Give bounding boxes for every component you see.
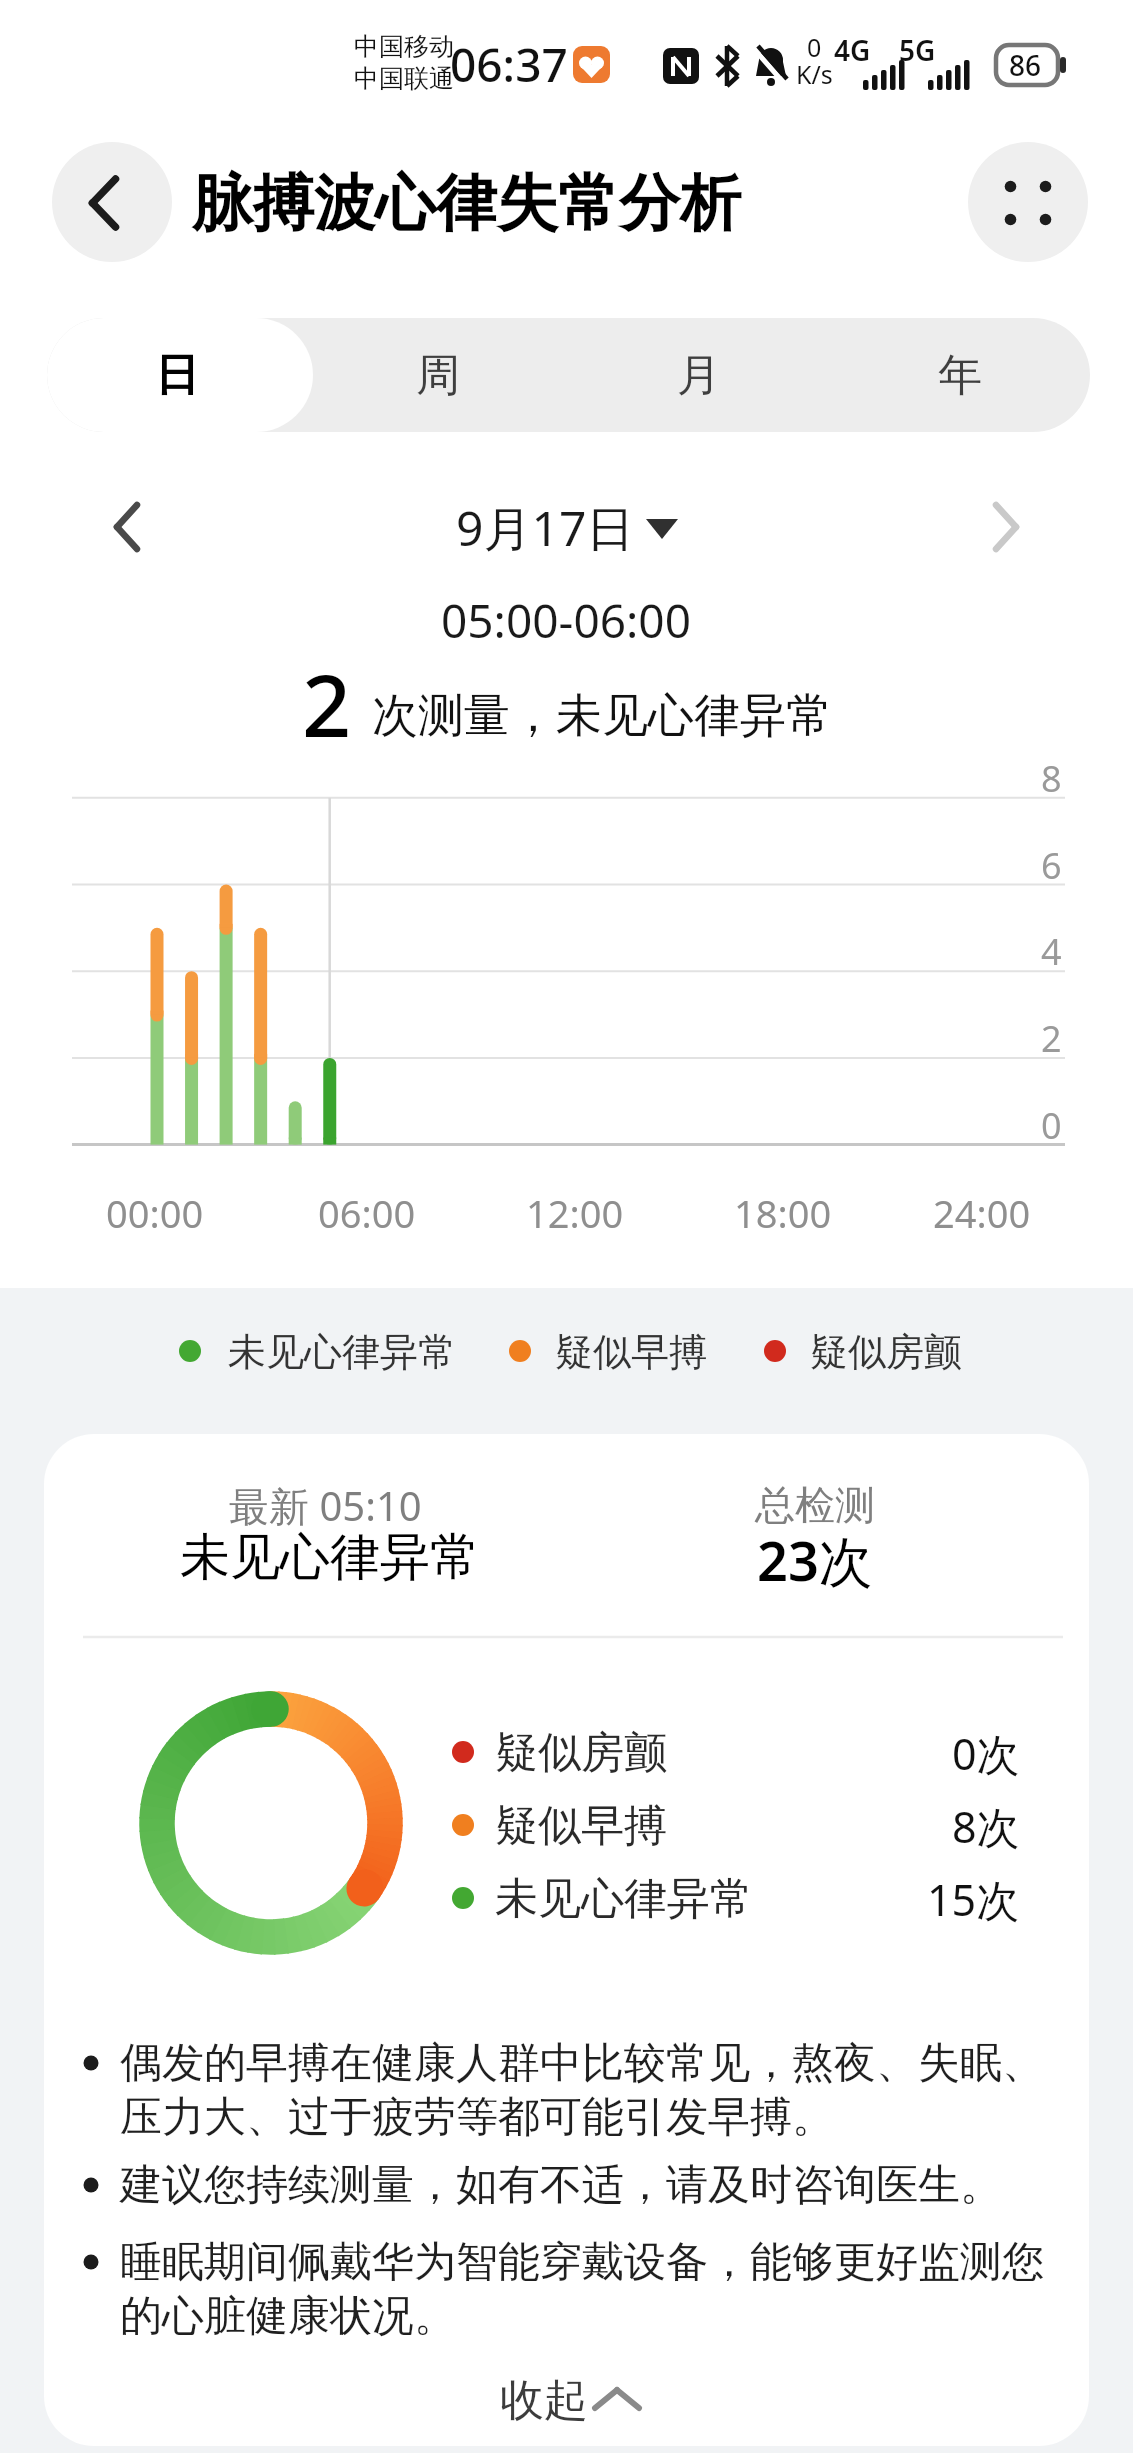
staticText: 2: [1041, 1014, 1062, 1063]
button[interactable]: 周: [307, 318, 568, 432]
staticText: 建议您持续测量，如有不适，请及时咨询医生。: [120, 2159, 1002, 2212]
staticText: 8次: [952, 1797, 1020, 1856]
staticText: 中国移动: [354, 31, 454, 62]
staticText: 日: [155, 348, 199, 403]
staticText: 86: [1009, 46, 1042, 84]
staticText: 4G: [834, 31, 871, 69]
staticText: 15次: [927, 1870, 1020, 1929]
button[interactable]: 收起: [440, 2360, 700, 2440]
staticText: 月: [677, 348, 721, 403]
staticText: 中国联通: [354, 63, 454, 94]
staticText: 8: [1041, 754, 1062, 803]
staticText: 06:37: [450, 33, 568, 96]
button[interactable]: [52, 142, 172, 262]
staticText: 收起: [500, 2373, 588, 2428]
staticText: 最新 05:10: [229, 1478, 422, 1533]
button[interactable]: [968, 142, 1088, 262]
staticText: 4: [1041, 927, 1062, 976]
staticText: 周: [416, 348, 460, 403]
staticText: K/s: [796, 57, 833, 91]
button[interactable]: [430, 485, 700, 570]
staticText: 脉搏波心律失常分析: [192, 165, 741, 242]
staticText: 疑似房颤: [495, 1726, 667, 1780]
staticText: 05:00-06:00: [441, 589, 691, 652]
staticText: 疑似早搏: [555, 1328, 707, 1376]
staticText: 2: [302, 645, 352, 755]
staticText: 24:00: [933, 1187, 1031, 1239]
staticText: 23次: [757, 1523, 873, 1597]
staticText: 06:00: [318, 1187, 416, 1239]
button[interactable]: 月: [568, 318, 829, 432]
button[interactable]: [80, 480, 175, 575]
staticText: 00:00: [106, 1187, 204, 1239]
staticText: 年: [938, 348, 982, 403]
staticText: 睡眠期间佩戴华为智能穿戴设备，能够更好监测您: [120, 2236, 1044, 2289]
staticText: 12:00: [526, 1187, 624, 1239]
staticText: 0: [1041, 1101, 1062, 1150]
staticText: 总检测: [755, 1480, 875, 1530]
staticText: 疑似房颤: [810, 1328, 962, 1376]
staticText: 9月17日: [456, 495, 635, 561]
button[interactable]: 年: [829, 318, 1090, 432]
staticText: 6: [1041, 841, 1062, 890]
staticText: 压力大、过于疲劳等都可能引发早搏。: [120, 2091, 834, 2144]
staticText: 5G: [899, 31, 936, 69]
button[interactable]: [958, 480, 1053, 575]
staticText: 疑似早搏: [495, 1799, 667, 1853]
staticText: 0: [807, 30, 822, 64]
staticText: 0次: [952, 1724, 1020, 1783]
staticText: 未见心律异常: [228, 1328, 456, 1376]
staticText: 的心脏健康状况。: [120, 2290, 456, 2343]
staticText: 未见心律异常: [180, 1526, 480, 1589]
staticText: 偶发的早搏在健康人群中比较常见，熬夜、失眠、: [120, 2037, 1044, 2090]
staticText: 次测量，未见心律异常: [372, 687, 832, 745]
staticText: 未见心律异常: [495, 1872, 753, 1926]
staticText: 18:00: [734, 1187, 832, 1239]
button[interactable]: 日: [47, 318, 307, 432]
